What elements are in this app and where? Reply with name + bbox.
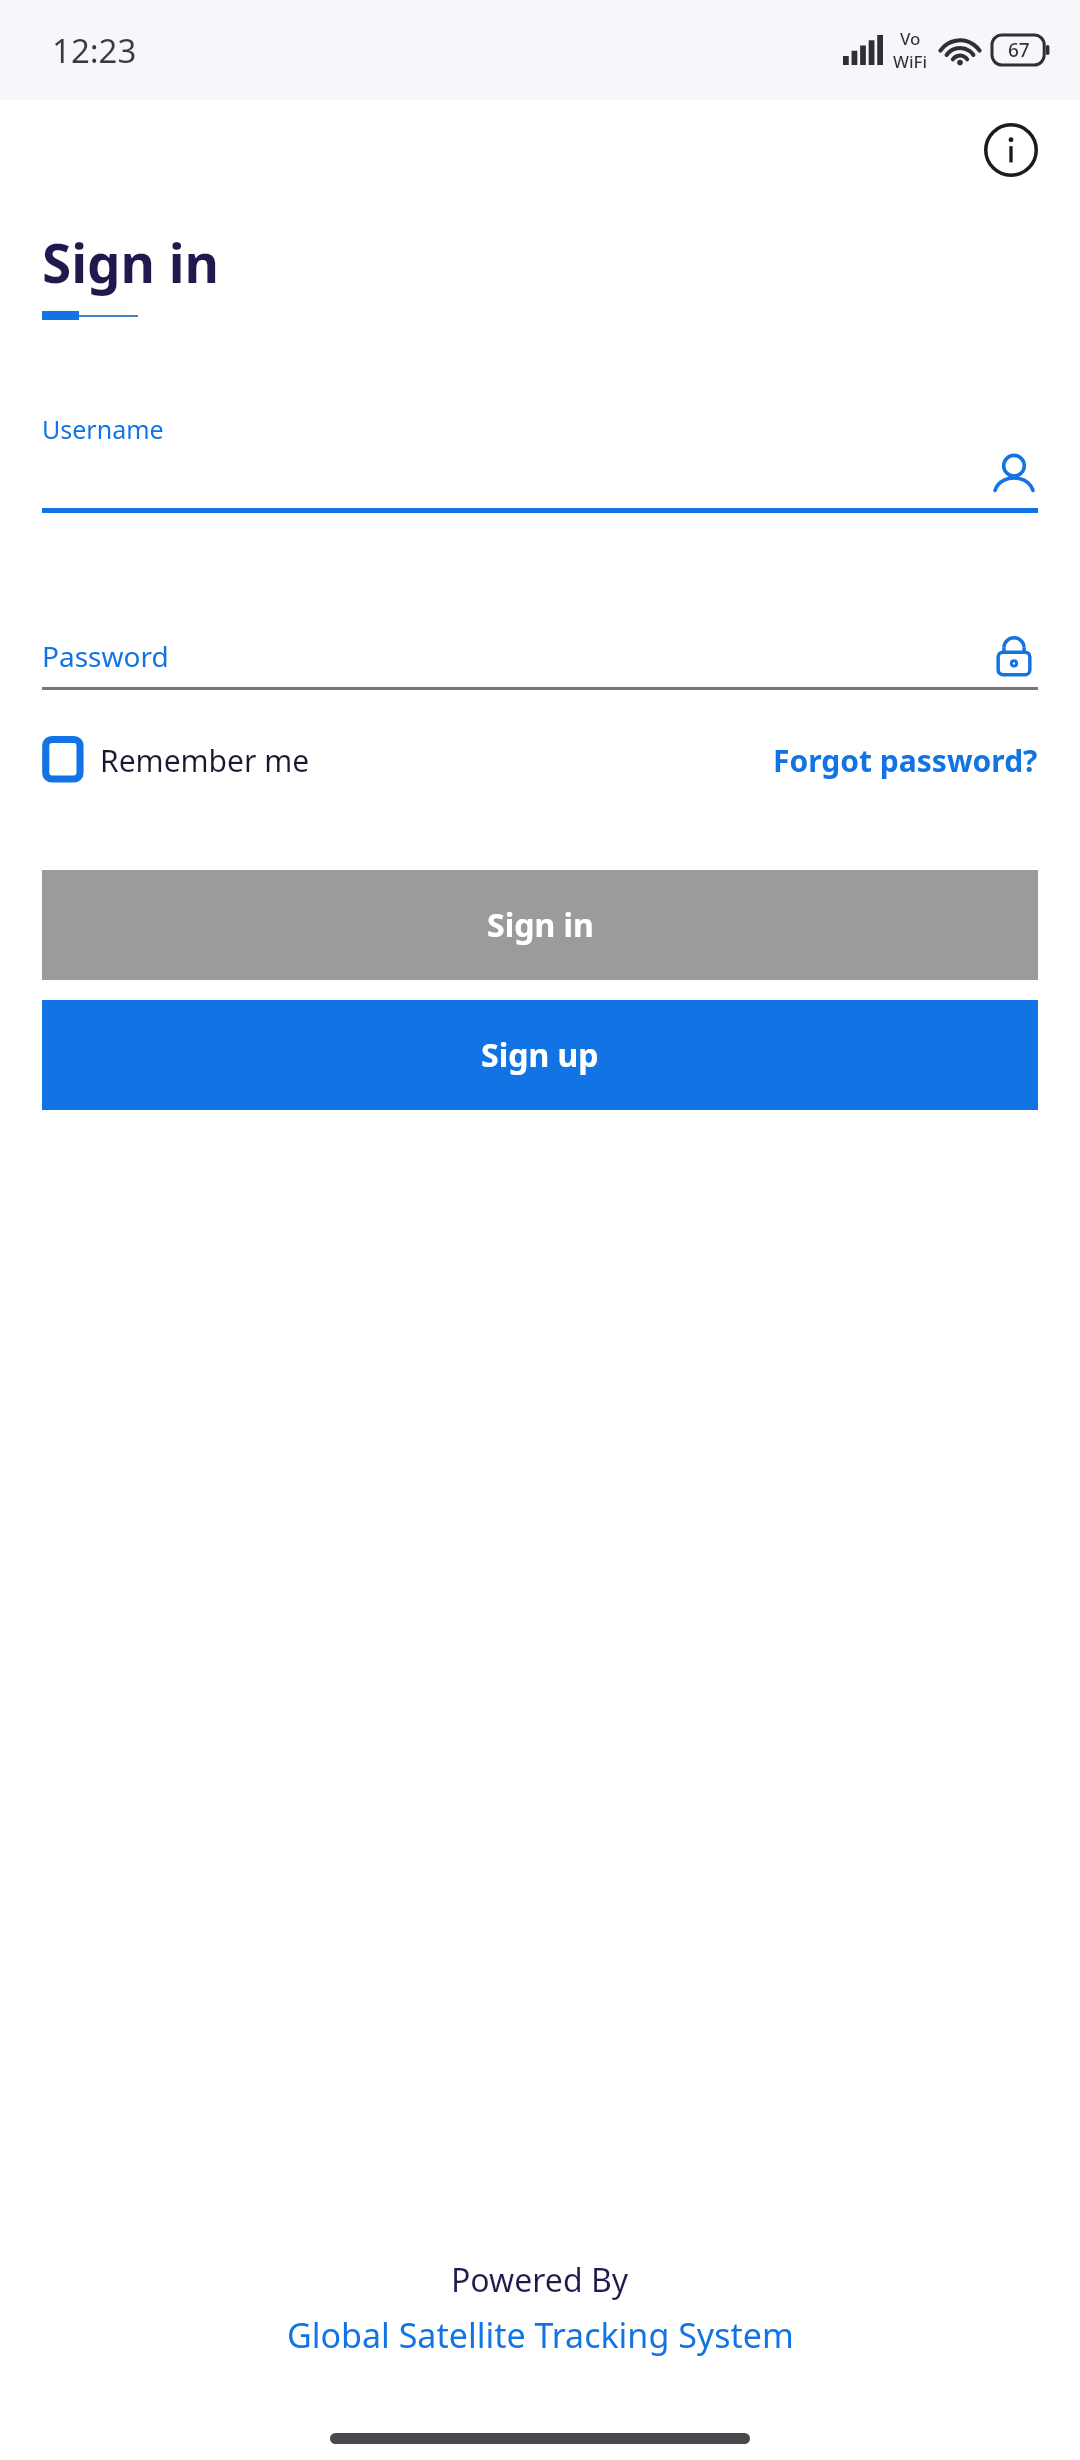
staticText: Forgot password?: [773, 740, 1038, 781]
button[interactable]: Information: [984, 123, 1038, 177]
staticText: WiFi: [893, 50, 928, 73]
staticText: Global Satellite Tracking System: [287, 2312, 794, 2358]
button[interactable]: Sign in: [42, 870, 1038, 980]
staticText: Sign up: [481, 1033, 599, 1077]
staticText: 67: [1008, 37, 1030, 63]
staticText: 12:23: [52, 28, 137, 73]
staticText: Powered By: [451, 2258, 629, 2302]
staticText: Sign in: [487, 903, 594, 947]
button[interactable]: Remember me: [42, 738, 310, 782]
staticText: Password: [42, 637, 169, 675]
staticText: Username: [42, 412, 164, 446]
staticText: Remember me: [100, 740, 310, 781]
button[interactable]: Forgot password?: [773, 740, 1038, 781]
staticText: Vo: [900, 27, 921, 50]
button[interactable]: Show password: [990, 632, 1038, 680]
staticText: Sign in: [42, 226, 220, 298]
button[interactable]: Sign up: [42, 1000, 1038, 1110]
button[interactable]: Username: [990, 453, 1038, 501]
